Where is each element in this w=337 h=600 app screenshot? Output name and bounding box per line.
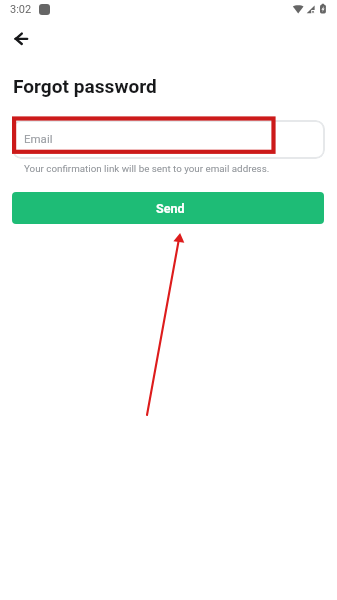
- staticText: Forgot password: [13, 75, 157, 97]
- staticText: 3:02: [10, 3, 32, 16]
- staticText: Send: [156, 201, 185, 216]
- button[interactable]: Email: [12, 120, 325, 159]
- button[interactable]: Send: [12, 192, 324, 224]
- other: Wi-Fi, mobile signal and battery status: [290, 0, 330, 16]
- staticText: Email: [24, 132, 53, 145]
- button[interactable]: Back: [5, 21, 39, 55]
- staticText: Your confirmation link will be sent to y…: [24, 163, 270, 174]
